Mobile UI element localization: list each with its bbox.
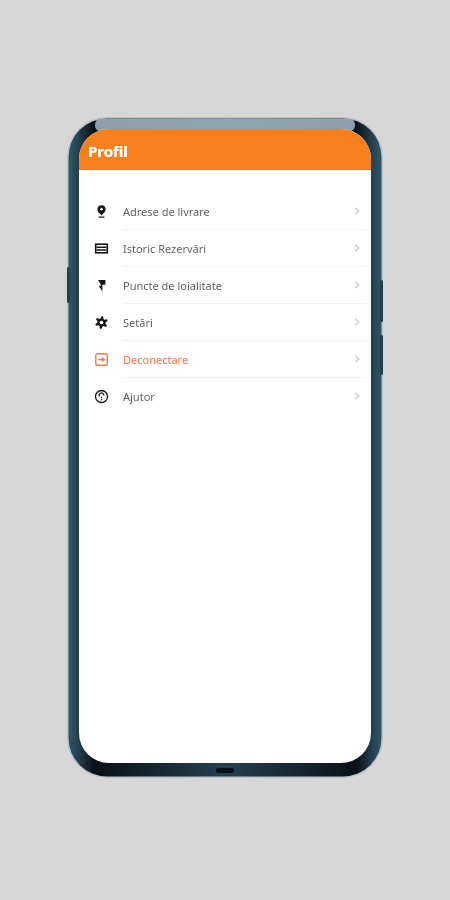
staticText: Adrese de livrare xyxy=(123,204,210,219)
staticText: Setări xyxy=(123,315,153,330)
button[interactable]: Delivery addresses xyxy=(79,193,371,229)
other: Delivery addresses xyxy=(95,205,108,218)
other: Settings xyxy=(95,316,108,329)
button[interactable]: Help xyxy=(79,378,371,414)
staticText: Puncte de loialitate xyxy=(123,278,222,293)
button[interactable]: Reservation history xyxy=(79,230,371,266)
button[interactable]: Log out xyxy=(79,341,371,377)
staticText: Istoric Rezervări xyxy=(123,241,207,256)
button[interactable]: Profil xyxy=(79,129,371,170)
staticText: Profil xyxy=(88,141,128,161)
button[interactable]: Settings xyxy=(79,304,371,340)
staticText: Deconectare xyxy=(123,352,189,367)
other: Loyalty points xyxy=(95,279,108,292)
other: Log out xyxy=(95,353,108,366)
other: Help xyxy=(95,390,108,403)
staticText: Ajutor xyxy=(123,389,155,404)
button[interactable]: Loyalty points xyxy=(79,267,371,303)
other: Reservation history xyxy=(95,242,108,255)
